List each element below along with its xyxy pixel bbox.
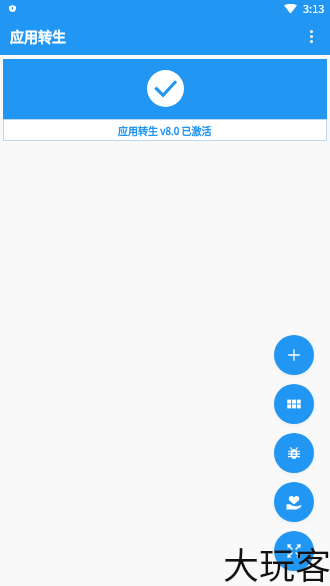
staticText: 应用转生 v8.0 已激活	[118, 123, 212, 137]
staticText: 3:13	[303, 0, 325, 16]
button[interactable]: Add	[274, 335, 314, 375]
staticText: 大玩客	[223, 537, 330, 586]
button[interactable]: Debug	[274, 433, 314, 473]
button[interactable]: Apps	[274, 384, 314, 424]
button[interactable]: Fullscreen	[274, 531, 314, 571]
staticText: 应用转生	[10, 26, 66, 46]
button[interactable]: Donate	[274, 482, 314, 522]
button[interactable]: More options	[294, 19, 328, 53]
